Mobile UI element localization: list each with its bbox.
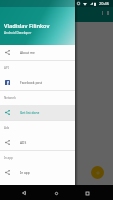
staticText: Get list done bbox=[20, 111, 40, 115]
button[interactable]: Search bbox=[100, 9, 105, 16]
button[interactable]: Add bbox=[91, 166, 104, 179]
staticText: API bbox=[4, 66, 9, 70]
button[interactable]: In app bbox=[0, 165, 75, 180]
staticText: In app bbox=[4, 156, 13, 160]
button[interactable]: Home bbox=[51, 188, 61, 198]
staticText: ADS bbox=[20, 141, 27, 145]
button[interactable]: Back bbox=[19, 188, 29, 198]
button[interactable]: Recent apps bbox=[82, 188, 92, 198]
staticText: Network bbox=[4, 96, 16, 100]
button[interactable]: More options bbox=[105, 9, 110, 16]
button[interactable]: f bbox=[0, 75, 75, 90]
staticText: Ads bbox=[4, 126, 10, 130]
button[interactable]: Get list done bbox=[0, 105, 75, 120]
staticText: In app bbox=[20, 171, 30, 175]
staticText: Vladislav Filinkov bbox=[4, 22, 50, 30]
staticText: f bbox=[7, 80, 9, 85]
staticText: 20:46 bbox=[99, 1, 109, 6]
staticText: Android Developer bbox=[4, 31, 32, 35]
button[interactable]: About me bbox=[0, 45, 75, 60]
staticText: About me bbox=[20, 51, 35, 55]
staticText: Facebook post bbox=[20, 81, 43, 85]
button[interactable]: ADS bbox=[0, 135, 75, 150]
